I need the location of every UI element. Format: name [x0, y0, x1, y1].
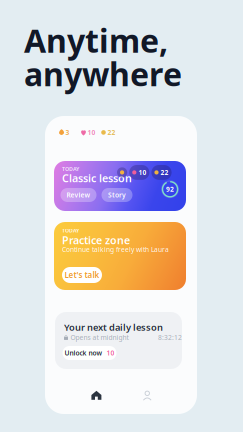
button[interactable]: TODAY [54, 161, 186, 211]
staticText: Review [66, 191, 90, 199]
staticText: 22 [107, 128, 115, 137]
button[interactable]: Story [101, 188, 132, 202]
staticText: 92 [166, 185, 174, 194]
staticText: Your next daily lesson [64, 321, 163, 333]
button[interactable]: Let's talk [62, 267, 102, 283]
staticText: Classic lesson [62, 171, 132, 185]
staticText: TODAY [62, 227, 79, 234]
staticText: Unlock now [64, 349, 102, 357]
button[interactable]: Profile [124, 382, 168, 408]
button[interactable]: TODAY [54, 222, 186, 290]
staticText: 10 [138, 168, 146, 177]
staticText: 10 [87, 128, 95, 137]
staticText: 8:32:12 [158, 333, 182, 342]
staticText: Anytime, [24, 19, 168, 61]
staticText: Practice zone [62, 233, 130, 247]
staticText: TODAY [62, 165, 79, 173]
staticText: Opens at midnight [70, 333, 128, 342]
button[interactable]: Home [74, 382, 118, 408]
staticText: anywhere [24, 52, 182, 95]
button[interactable]: Review [60, 188, 96, 202]
staticText: 22 [161, 168, 169, 177]
staticText: Let's talk [64, 270, 99, 280]
staticText: Story [108, 191, 126, 199]
staticText: 3 [65, 128, 69, 137]
staticText: 10 [106, 349, 114, 357]
staticText: Continue talking freely with Laura [62, 245, 169, 254]
button[interactable]: Unlock now [62, 346, 116, 360]
